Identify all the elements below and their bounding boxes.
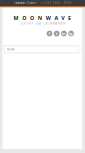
staticText: ⌄: [75, 48, 77, 51]
staticText: in: [62, 31, 66, 36]
staticText: t: [56, 31, 58, 36]
button[interactable]: Facebook: [47, 31, 52, 36]
staticText: Home: [7, 48, 15, 51]
button[interactable]: Twitter: [54, 31, 60, 36]
staticText: Catamaran Charter: [13, 1, 36, 5]
button[interactable]: Instagram: [68, 31, 74, 36]
button[interactable]: LinkedIn: [61, 31, 67, 36]
staticText: +1 347 1000 - 3000: [40, 1, 71, 5]
staticText: ig: [69, 31, 73, 36]
staticText: f: [48, 31, 50, 36]
button[interactable]: +1 347 1000 - 3000: [40, 1, 71, 5]
staticText: LUXURY SEA CATAMARAN: [20, 22, 65, 25]
staticText: MOONWAVE: [13, 14, 71, 22]
button[interactable]: Home: [4, 46, 80, 53]
button[interactable]: Catamaran Charter: [13, 1, 36, 5]
